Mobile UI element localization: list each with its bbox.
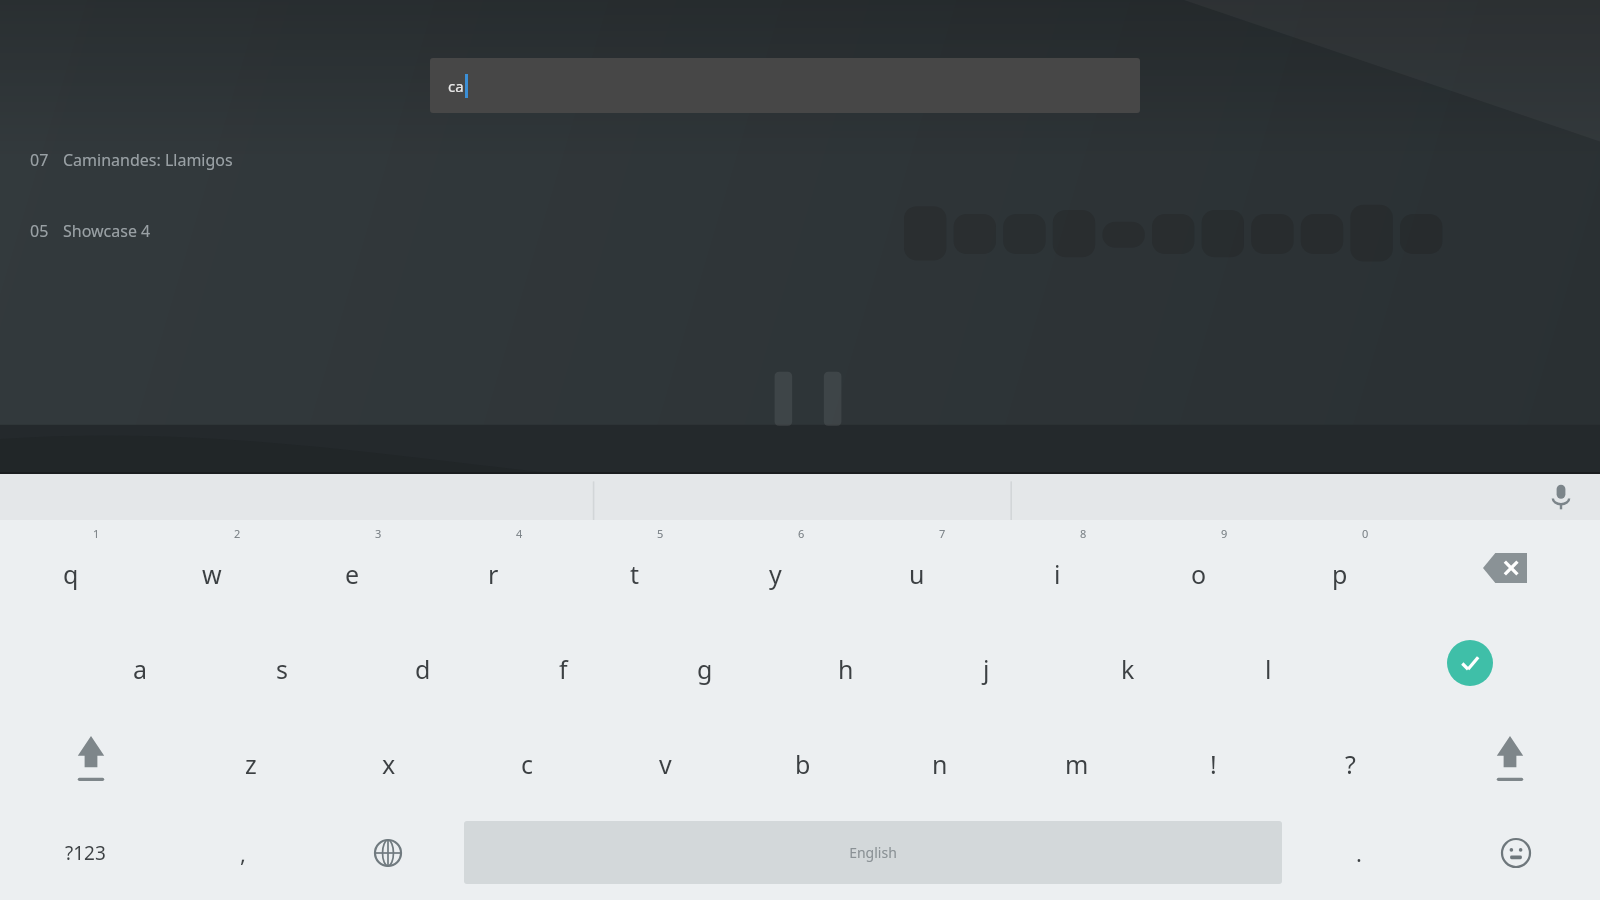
staticText: 3 bbox=[375, 526, 382, 541]
staticText: w bbox=[202, 557, 222, 591]
button[interactable]: 07 bbox=[0, 135, 1600, 185]
button[interactable]: c bbox=[458, 710, 596, 805]
staticText: f bbox=[559, 652, 568, 686]
staticText: 0 bbox=[1362, 526, 1369, 541]
button[interactable]: Shift bbox=[0, 710, 182, 805]
staticText: x bbox=[382, 747, 396, 781]
staticText: Caminandes: Llamigos bbox=[63, 149, 233, 171]
button[interactable]: m bbox=[1008, 710, 1145, 805]
button[interactable]: ca bbox=[430, 58, 1140, 113]
button[interactable]: 2 bbox=[141, 520, 282, 615]
staticText: a bbox=[133, 652, 148, 686]
staticText: j bbox=[983, 652, 990, 686]
staticText: n bbox=[932, 747, 948, 781]
button[interactable]: z bbox=[182, 710, 320, 805]
button[interactable]: Change language bbox=[315, 805, 460, 900]
staticText: t bbox=[630, 557, 640, 591]
staticText: ? bbox=[1345, 747, 1356, 781]
button[interactable]: d bbox=[352, 615, 493, 710]
staticText: b bbox=[795, 747, 811, 781]
staticText: 8 bbox=[1080, 526, 1087, 541]
staticText: r bbox=[488, 557, 499, 591]
staticText: h bbox=[838, 652, 854, 686]
staticText: 1 bbox=[93, 526, 100, 541]
staticText: 2 bbox=[234, 526, 241, 541]
button[interactable]: Backspace bbox=[1410, 520, 1600, 615]
button[interactable]: ! bbox=[1145, 710, 1282, 805]
staticText: z bbox=[245, 747, 257, 781]
staticText: u bbox=[909, 557, 925, 591]
button[interactable]: ?123 bbox=[0, 805, 170, 900]
staticText: i bbox=[1054, 557, 1061, 591]
button[interactable]: 5 bbox=[564, 520, 705, 615]
staticText: Showcase 4 bbox=[63, 220, 151, 242]
button[interactable]: x bbox=[320, 710, 458, 805]
button[interactable]: h bbox=[775, 615, 916, 710]
button[interactable]: 7 bbox=[846, 520, 987, 615]
staticText: ?123 bbox=[65, 840, 106, 866]
button[interactable]: 05 bbox=[0, 206, 1600, 256]
staticText: k bbox=[1121, 652, 1135, 686]
staticText: 5 bbox=[657, 526, 664, 541]
staticText: ! bbox=[1210, 747, 1217, 781]
button[interactable]: Enter bbox=[1339, 615, 1600, 710]
button[interactable]: v bbox=[596, 710, 734, 805]
staticText: ca bbox=[448, 76, 464, 96]
button[interactable]: n bbox=[871, 710, 1008, 805]
staticText: g bbox=[697, 652, 713, 686]
staticText: l bbox=[1265, 652, 1272, 686]
button[interactable]: f bbox=[493, 615, 634, 710]
staticText: . bbox=[1356, 838, 1362, 868]
button[interactable]: , bbox=[170, 805, 315, 900]
staticText: m bbox=[1065, 747, 1089, 781]
button[interactable]: Emoji bbox=[1431, 805, 1600, 900]
staticText: 4 bbox=[516, 526, 523, 541]
staticText: d bbox=[415, 652, 431, 686]
button[interactable]: ? bbox=[1282, 710, 1419, 805]
staticText: y bbox=[769, 557, 782, 591]
staticText: English bbox=[849, 843, 897, 862]
button[interactable]: English bbox=[464, 821, 1282, 884]
button[interactable]: a bbox=[70, 615, 211, 710]
staticText: c bbox=[521, 747, 534, 781]
button[interactable]: j bbox=[916, 615, 1057, 710]
button[interactable]: Shift bbox=[1419, 710, 1600, 805]
staticText: 9 bbox=[1221, 526, 1228, 541]
button[interactable]: k bbox=[1057, 615, 1198, 710]
button[interactable]: 6 bbox=[705, 520, 846, 615]
staticText: q bbox=[63, 557, 79, 591]
staticText: s bbox=[276, 652, 288, 686]
button[interactable]: . bbox=[1286, 805, 1431, 900]
staticText: p bbox=[1332, 557, 1348, 591]
button[interactable]: s bbox=[211, 615, 352, 710]
staticText: 05 bbox=[30, 220, 49, 242]
staticText: 7 bbox=[939, 526, 946, 541]
button[interactable]: l bbox=[1198, 615, 1339, 710]
staticText: 6 bbox=[798, 526, 805, 541]
button[interactable]: 9 bbox=[1128, 520, 1269, 615]
staticText: o bbox=[1191, 557, 1207, 591]
button[interactable]: Voice input bbox=[1540, 476, 1582, 518]
button[interactable]: 4 bbox=[423, 520, 564, 615]
button[interactable]: 3 bbox=[282, 520, 423, 615]
button[interactable]: b bbox=[734, 710, 871, 805]
staticText: , bbox=[240, 838, 246, 868]
staticText: 07 bbox=[30, 149, 49, 171]
staticText: v bbox=[659, 747, 672, 781]
button[interactable]: 0 bbox=[1269, 520, 1410, 615]
button[interactable]: g bbox=[634, 615, 775, 710]
button[interactable]: 1 bbox=[0, 520, 141, 615]
staticText: e bbox=[345, 557, 360, 591]
button[interactable]: 8 bbox=[987, 520, 1128, 615]
